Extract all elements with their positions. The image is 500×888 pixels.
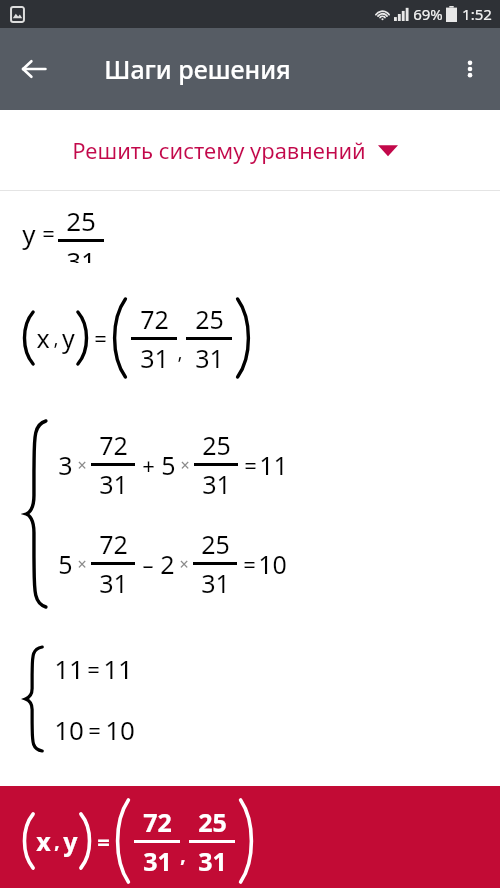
staticText: 25	[198, 805, 227, 839]
staticText: 31	[143, 844, 172, 878]
staticText: ,	[177, 339, 183, 365]
staticText: =	[88, 715, 101, 745]
staticText: 11	[103, 651, 133, 686]
staticText: 69%	[413, 4, 443, 24]
staticText: =	[244, 450, 257, 480]
staticText: 5	[161, 448, 176, 482]
staticText: 31	[99, 467, 128, 501]
staticText: y	[63, 824, 78, 858]
staticText: ×	[77, 454, 87, 476]
staticText: 31	[99, 566, 128, 600]
staticText: 3	[58, 448, 73, 482]
staticText: 72	[99, 428, 128, 462]
staticText: 72	[140, 302, 169, 336]
staticText: ,	[53, 325, 59, 351]
staticText: 31	[198, 844, 227, 878]
staticText: x	[36, 321, 50, 355]
staticText: 5	[58, 547, 73, 581]
staticText: ×	[77, 553, 87, 575]
staticText: 72	[99, 527, 128, 561]
staticText: 25	[195, 302, 224, 336]
staticText: 31	[202, 467, 231, 501]
staticText: =	[94, 323, 107, 353]
staticText: 25	[201, 527, 230, 561]
staticText: y	[22, 216, 36, 251]
staticText: 2	[160, 547, 175, 581]
staticText: 31	[66, 243, 96, 263]
staticText: 72	[143, 805, 172, 839]
staticText: +	[142, 450, 155, 480]
staticText: =	[87, 654, 100, 684]
staticText: 31	[140, 341, 169, 375]
staticText: 10	[105, 712, 135, 747]
staticText: Шаги решения	[104, 52, 291, 86]
staticText: y	[62, 321, 75, 355]
staticText: 1:52	[462, 4, 492, 24]
staticText: ×	[179, 553, 189, 575]
staticText: =	[42, 218, 55, 248]
staticText: 25	[202, 428, 231, 462]
button[interactable]: Решить систему уравнений	[0, 110, 500, 190]
button[interactable]: Back	[10, 45, 58, 93]
staticText: Решить систему уравнений	[72, 135, 366, 165]
button[interactable]: x	[0, 786, 500, 888]
staticText: x	[36, 824, 51, 858]
button[interactable]: More options	[446, 45, 494, 93]
staticText: 25	[66, 203, 96, 238]
staticText: –	[142, 549, 154, 579]
staticText: =	[243, 549, 256, 579]
staticText: 11	[54, 651, 84, 686]
staticText: 10	[258, 547, 287, 581]
staticText: 31	[201, 566, 230, 600]
staticText: 31	[195, 341, 224, 375]
staticText: 11	[259, 448, 288, 482]
staticText: ×	[180, 454, 190, 476]
staticText: 10	[54, 712, 84, 747]
staticText: ,	[54, 828, 60, 854]
staticText: =	[97, 826, 110, 856]
staticText: ,	[180, 842, 186, 868]
